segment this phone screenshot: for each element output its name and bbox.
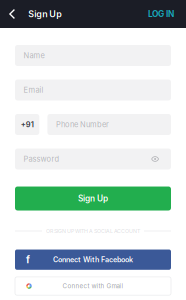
button[interactable]: Email bbox=[15, 79, 171, 100]
button[interactable]: Back bbox=[0, 0, 28, 28]
staticText: +91 bbox=[21, 120, 34, 129]
button[interactable]: Sign Up bbox=[28, 0, 62, 28]
staticText: LOG IN bbox=[148, 9, 174, 19]
button[interactable]: Password bbox=[15, 148, 171, 169]
button[interactable]: Sign Up bbox=[15, 186, 171, 210]
button[interactable]: Connect with Gmail bbox=[15, 277, 171, 295]
button[interactable]: +91 bbox=[15, 114, 39, 135]
staticText: Connect with Gmail bbox=[62, 282, 123, 290]
staticText: Connect With Facebook bbox=[53, 255, 133, 264]
button[interactable]: Phone Number bbox=[47, 114, 171, 135]
staticText: Email bbox=[24, 85, 44, 94]
staticText: Password bbox=[24, 154, 60, 163]
staticText: OR SIGN UP WITH A SOCIAL ACCOUNT bbox=[46, 228, 140, 234]
button[interactable]: Connect With Facebook bbox=[15, 249, 171, 270]
staticText: Sign Up bbox=[78, 193, 108, 203]
button[interactable]: Name bbox=[15, 45, 171, 66]
staticText: Phone Number bbox=[56, 120, 109, 129]
staticText: f bbox=[26, 254, 30, 266]
button[interactable]: LOG IN bbox=[148, 0, 186, 28]
staticText: Name bbox=[24, 51, 45, 60]
staticText: Sign Up bbox=[28, 9, 62, 19]
